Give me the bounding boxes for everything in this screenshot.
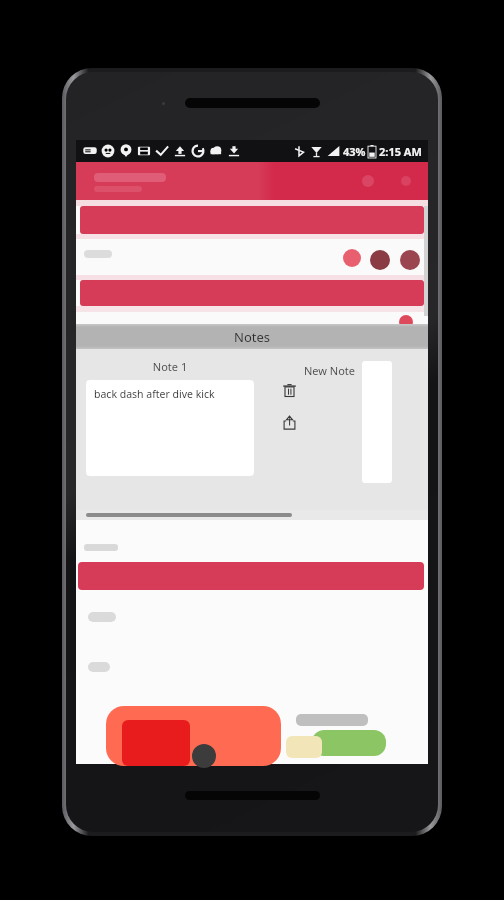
button[interactable]: Share note	[276, 409, 302, 435]
staticText: 43%	[343, 144, 366, 159]
staticText: back dash after dive kick	[94, 387, 215, 401]
button[interactable]: Delete note	[276, 377, 302, 403]
button[interactable]	[86, 513, 292, 517]
staticText: New Note	[304, 363, 356, 378]
staticText: Note 1	[86, 359, 254, 374]
button[interactable]: back dash after dive kick	[86, 380, 254, 476]
staticText: Notes	[234, 328, 270, 346]
staticText: 2:15 AM	[379, 144, 422, 159]
